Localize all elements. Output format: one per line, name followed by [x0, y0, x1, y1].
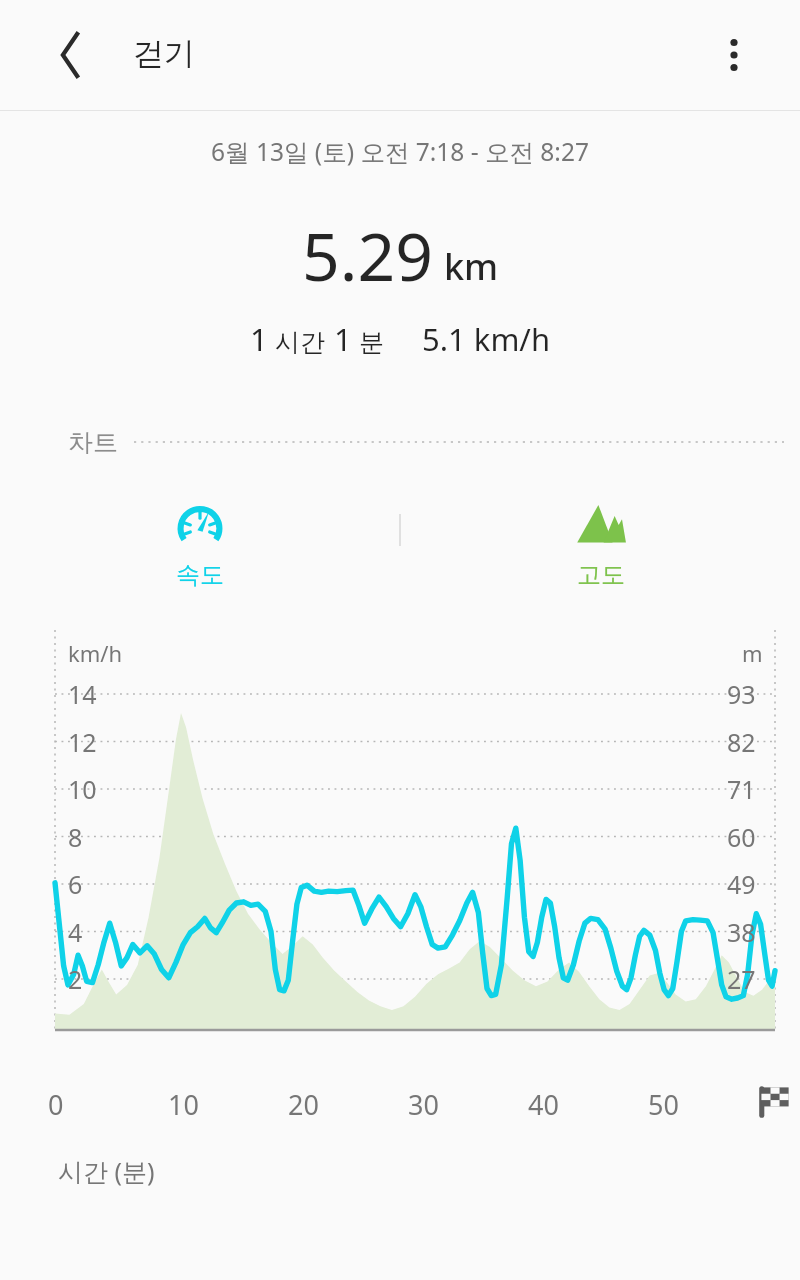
staticText: 5.1 km/h — [422, 318, 551, 360]
staticText: 2 — [68, 962, 83, 996]
staticText: 49 — [727, 867, 756, 901]
staticText: 27 — [727, 962, 756, 996]
staticText: 분 — [359, 327, 384, 358]
staticText: 4 — [68, 915, 83, 949]
staticText: 93 — [727, 677, 756, 711]
staticText: 차트 — [68, 427, 118, 458]
button[interactable]: 속도 — [171, 496, 229, 590]
staticText: 시간 — [275, 327, 325, 358]
staticText: 30 — [408, 1086, 439, 1123]
staticText: 40 — [528, 1086, 559, 1123]
staticText: 8 — [68, 820, 83, 854]
staticText: 10 — [168, 1086, 199, 1123]
button[interactable]: Back — [28, 13, 112, 97]
staticText: 6 — [68, 867, 83, 901]
staticText: 50 — [648, 1086, 679, 1123]
staticText: 고도 — [577, 560, 625, 590]
staticText: 82 — [727, 725, 756, 759]
staticText: 0 — [48, 1086, 64, 1123]
staticText: 시간 (분) — [58, 1154, 155, 1188]
staticText: 38 — [727, 915, 756, 949]
button[interactable]: More options — [694, 15, 774, 95]
other: Finish — [757, 1084, 791, 1118]
staticText: 20 — [288, 1086, 319, 1123]
staticText: 60 — [727, 820, 756, 854]
staticText: 6월 13일 (토) 오전 7:18 - 오전 8:27 — [211, 135, 589, 168]
staticText: km — [444, 242, 499, 291]
staticText: 10 — [68, 772, 97, 806]
staticText: km/h — [68, 638, 123, 668]
staticText: 속도 — [176, 560, 224, 590]
staticText: 71 — [727, 772, 756, 806]
staticText: 12 — [68, 725, 97, 759]
staticText: m — [742, 638, 763, 668]
staticText: 1 — [250, 318, 268, 360]
staticText: 14 — [68, 677, 97, 711]
button[interactable]: 고도 — [572, 496, 630, 590]
staticText: 5.29 — [302, 210, 433, 300]
staticText: 걷기 — [133, 34, 195, 73]
staticText: 1 — [334, 318, 352, 360]
